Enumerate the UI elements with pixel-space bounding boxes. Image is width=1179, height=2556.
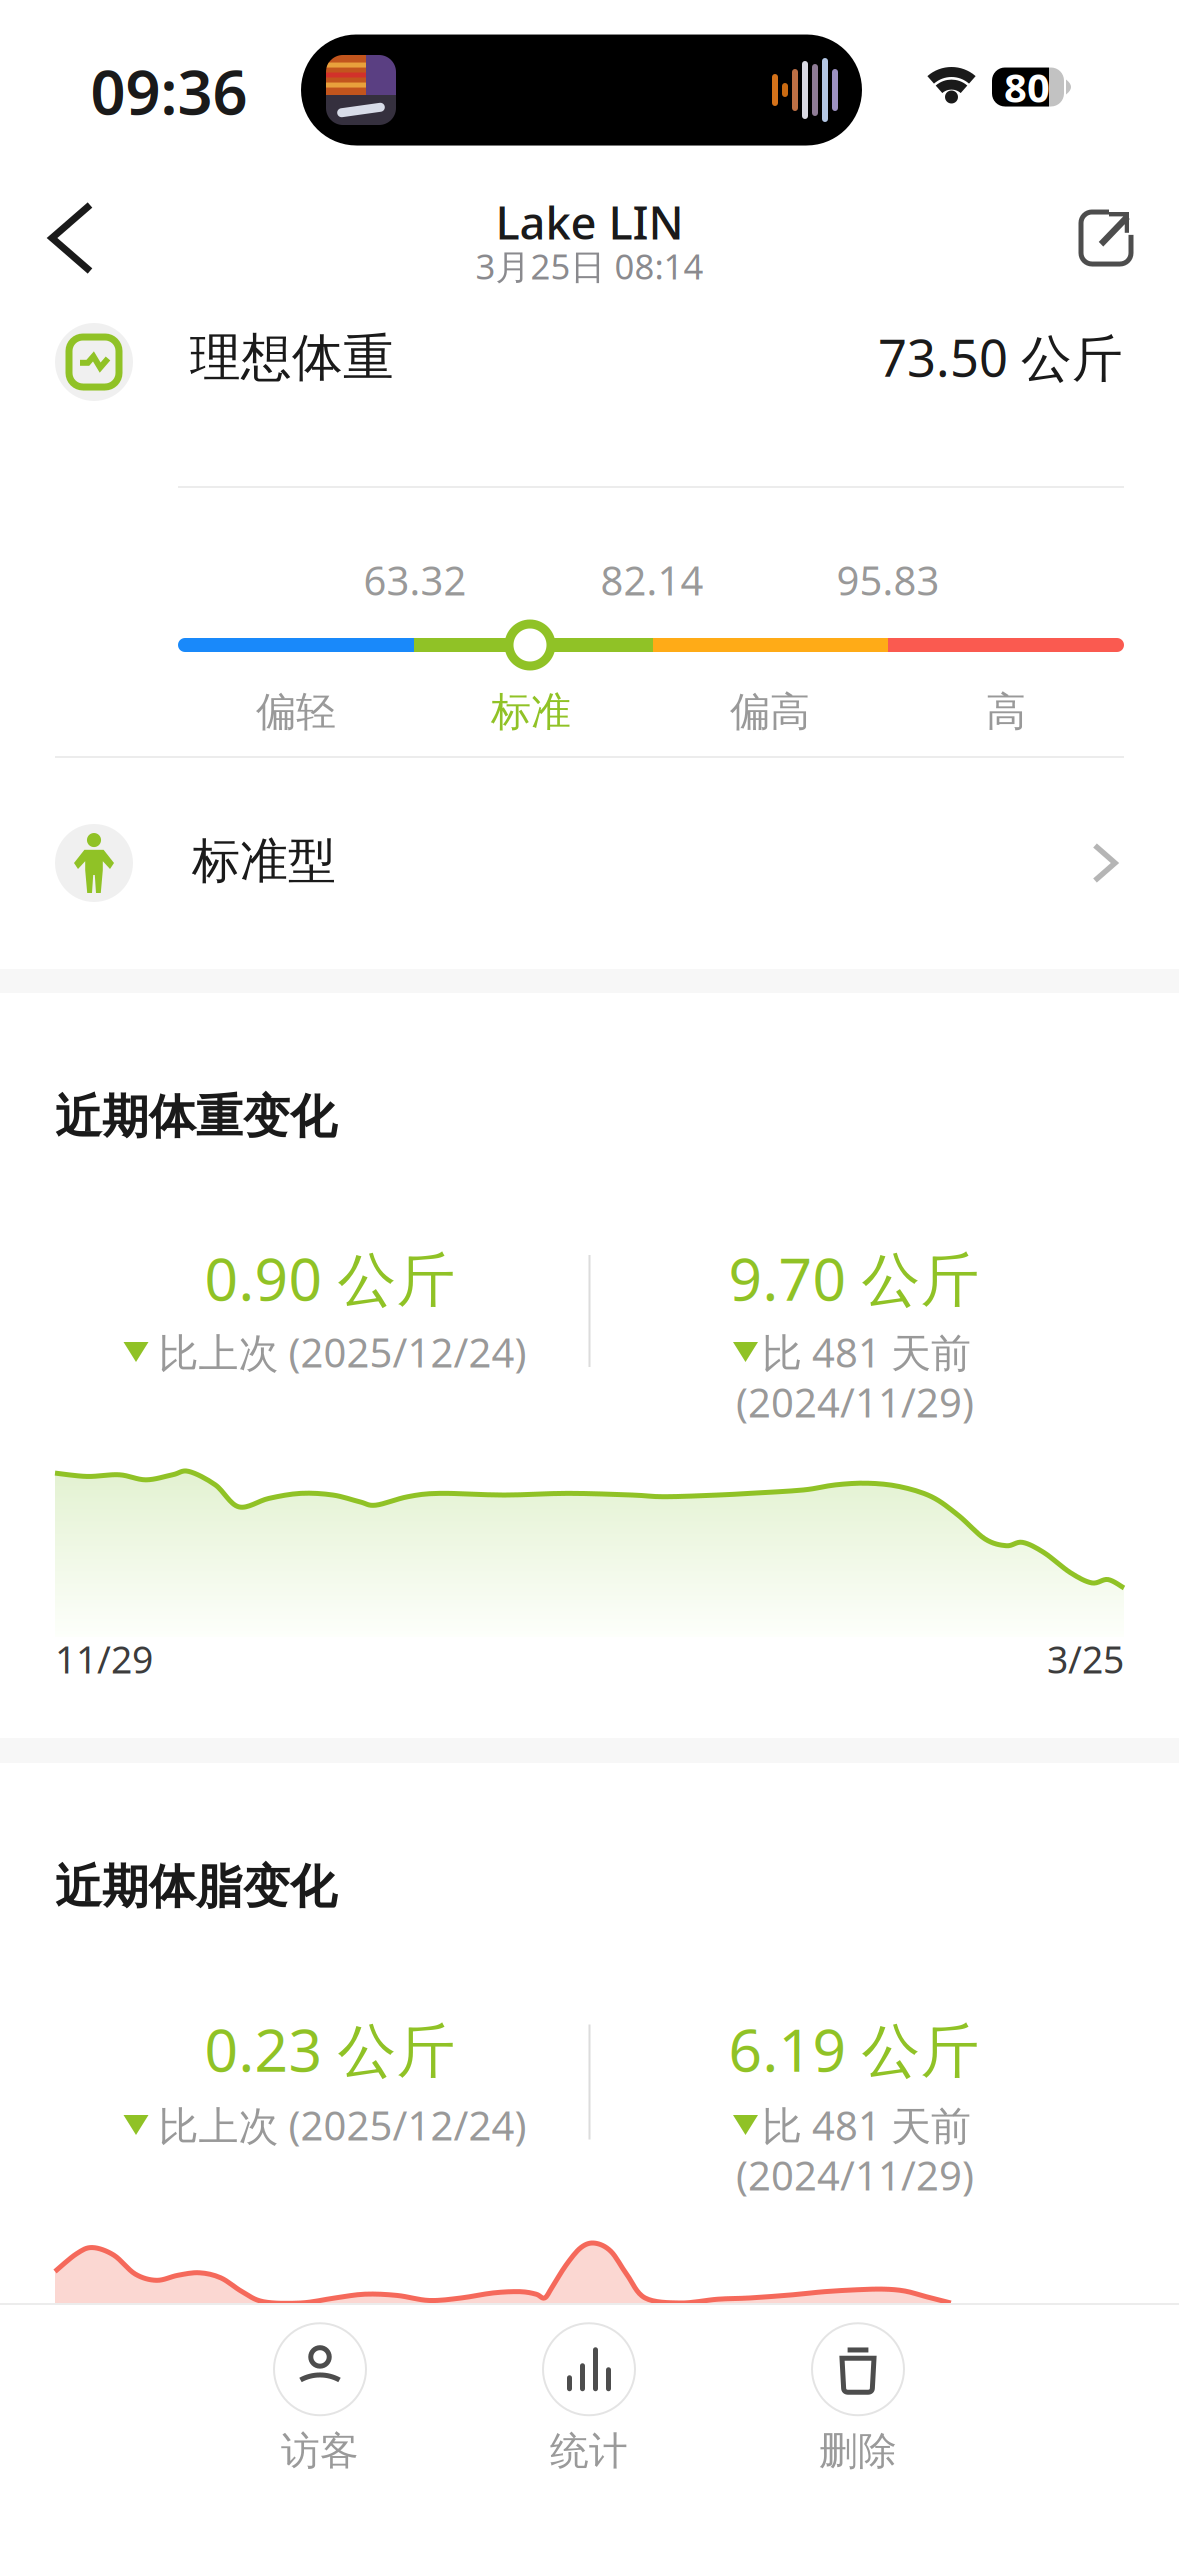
staticText: Lake LIN bbox=[495, 192, 683, 252]
staticText: 理想体重 bbox=[190, 327, 394, 389]
staticText: 9.70 公斤 bbox=[728, 1239, 979, 1317]
button[interactable]: 标准型 bbox=[0, 788, 1179, 938]
staticText: 比上次 (2025/12/24) bbox=[158, 2098, 526, 2151]
staticText: 82.14 bbox=[600, 553, 703, 606]
staticText: (2024/11/29) bbox=[736, 1375, 974, 1428]
staticText: 11/29 bbox=[55, 1634, 153, 1684]
staticText: 统计 bbox=[550, 2427, 628, 2475]
staticText: 访客 bbox=[281, 2427, 359, 2475]
button[interactable]: Back bbox=[40, 193, 102, 283]
staticText: 比 481 天前 bbox=[762, 2098, 971, 2151]
staticText: (2024/11/29) bbox=[736, 2148, 974, 2201]
staticText: 偏轻 bbox=[256, 687, 336, 736]
staticText: 高 bbox=[986, 687, 1026, 736]
staticText: 3/25 bbox=[1047, 1634, 1124, 1684]
button[interactable]: Share bbox=[1071, 202, 1141, 274]
staticText: 偏高 bbox=[730, 687, 810, 736]
button[interactable]: 删除 bbox=[812, 2323, 904, 2475]
staticText: 63.32 bbox=[363, 553, 466, 606]
staticText: 09:36 bbox=[90, 50, 247, 132]
staticText: 比上次 (2025/12/24) bbox=[158, 1325, 526, 1378]
staticText: 0.90 公斤 bbox=[204, 1239, 455, 1317]
staticText: 比 481 天前 bbox=[762, 1325, 971, 1378]
staticText: 80 bbox=[1004, 60, 1050, 113]
staticText: 删除 bbox=[819, 2427, 897, 2475]
staticText: 73.50 公斤 bbox=[878, 323, 1123, 391]
button[interactable]: 访客 bbox=[274, 2323, 366, 2475]
staticText: 近期体脂变化 bbox=[55, 1858, 337, 1916]
staticText: 近期体重变化 bbox=[55, 1088, 337, 1146]
button[interactable]: 统计 bbox=[543, 2323, 635, 2475]
staticText: 0.23 公斤 bbox=[204, 2010, 455, 2088]
staticText: 标准型 bbox=[192, 831, 336, 890]
staticText: 3月25日 08:14 bbox=[475, 243, 703, 289]
staticText: 95.83 bbox=[836, 553, 939, 606]
staticText: 6.19 公斤 bbox=[728, 2010, 979, 2088]
staticText: 标准 bbox=[491, 687, 571, 736]
